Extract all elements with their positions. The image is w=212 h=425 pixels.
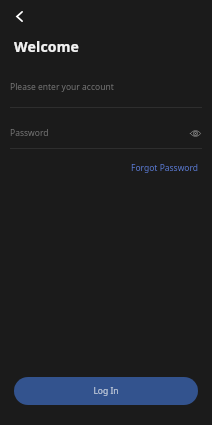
button[interactable]: Please enter your account (10, 78, 202, 108)
button[interactable]: Password (10, 125, 202, 141)
staticText: Log In (93, 385, 119, 397)
button[interactable]: Back (4, 1, 34, 31)
staticText: Password (10, 127, 49, 139)
button[interactable]: Log In (14, 377, 198, 405)
staticText: Forgot Password (131, 162, 199, 174)
button[interactable]: Show password (188, 126, 202, 140)
staticText: Welcome (14, 37, 80, 56)
button[interactable]: Forgot Password (130, 160, 200, 176)
staticText: Please enter your account (10, 81, 114, 93)
